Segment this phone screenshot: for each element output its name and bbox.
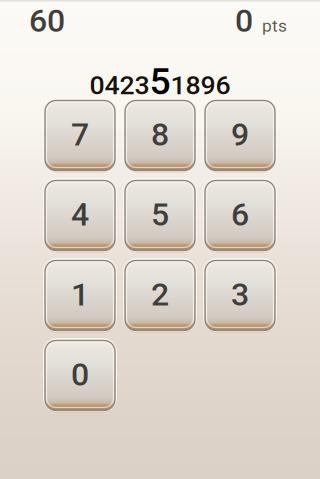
staticText: 3 (231, 276, 249, 313)
button[interactable]: 60 (29, 2, 65, 39)
staticText: 4 (71, 196, 89, 233)
staticText: 5 (149, 59, 170, 103)
staticText: 1896 (170, 69, 230, 101)
button[interactable]: 8 (125, 100, 195, 170)
staticText: 9 (231, 116, 249, 153)
button[interactable]: 4 (45, 180, 115, 250)
button[interactable]: 5 (125, 180, 195, 250)
staticText: 1 (71, 276, 89, 313)
button[interactable]: 0 (235, 2, 287, 39)
staticText: 2 (151, 276, 169, 313)
button[interactable]: 1 (45, 260, 115, 330)
staticText: 7 (71, 116, 89, 153)
staticText: 8 (151, 116, 169, 153)
button[interactable]: 6 (205, 180, 275, 250)
staticText: 6 (231, 196, 249, 233)
button[interactable]: 9 (205, 100, 275, 170)
staticText: 5 (151, 196, 169, 233)
button[interactable]: 3 (205, 260, 275, 330)
staticText: 60 (29, 2, 65, 39)
button[interactable]: 7 (45, 100, 115, 170)
staticText: 0 (235, 2, 253, 39)
staticText: pts (262, 16, 287, 36)
button[interactable]: 2 (125, 260, 195, 330)
staticText: 0423 (89, 69, 149, 101)
staticText: 0 (71, 356, 89, 393)
button[interactable]: 0 (45, 340, 115, 410)
